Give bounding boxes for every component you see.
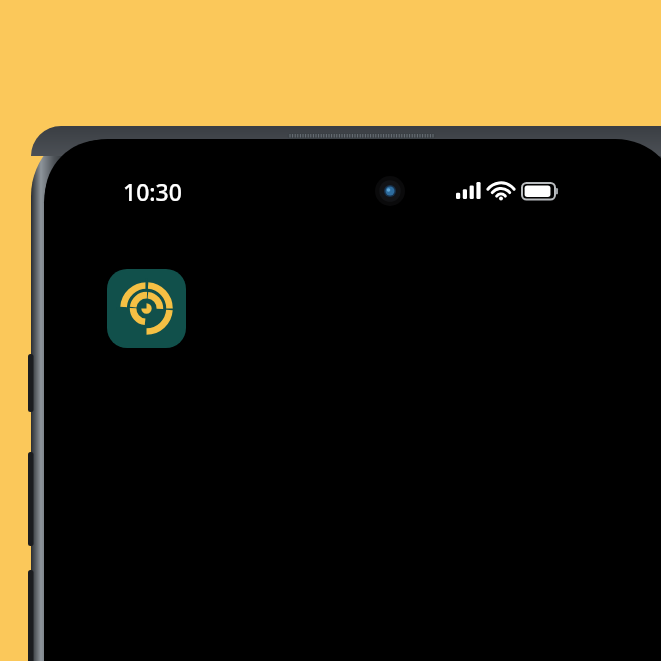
button[interactable]: App [107, 269, 186, 348]
staticText: 10:30 [123, 176, 182, 207]
